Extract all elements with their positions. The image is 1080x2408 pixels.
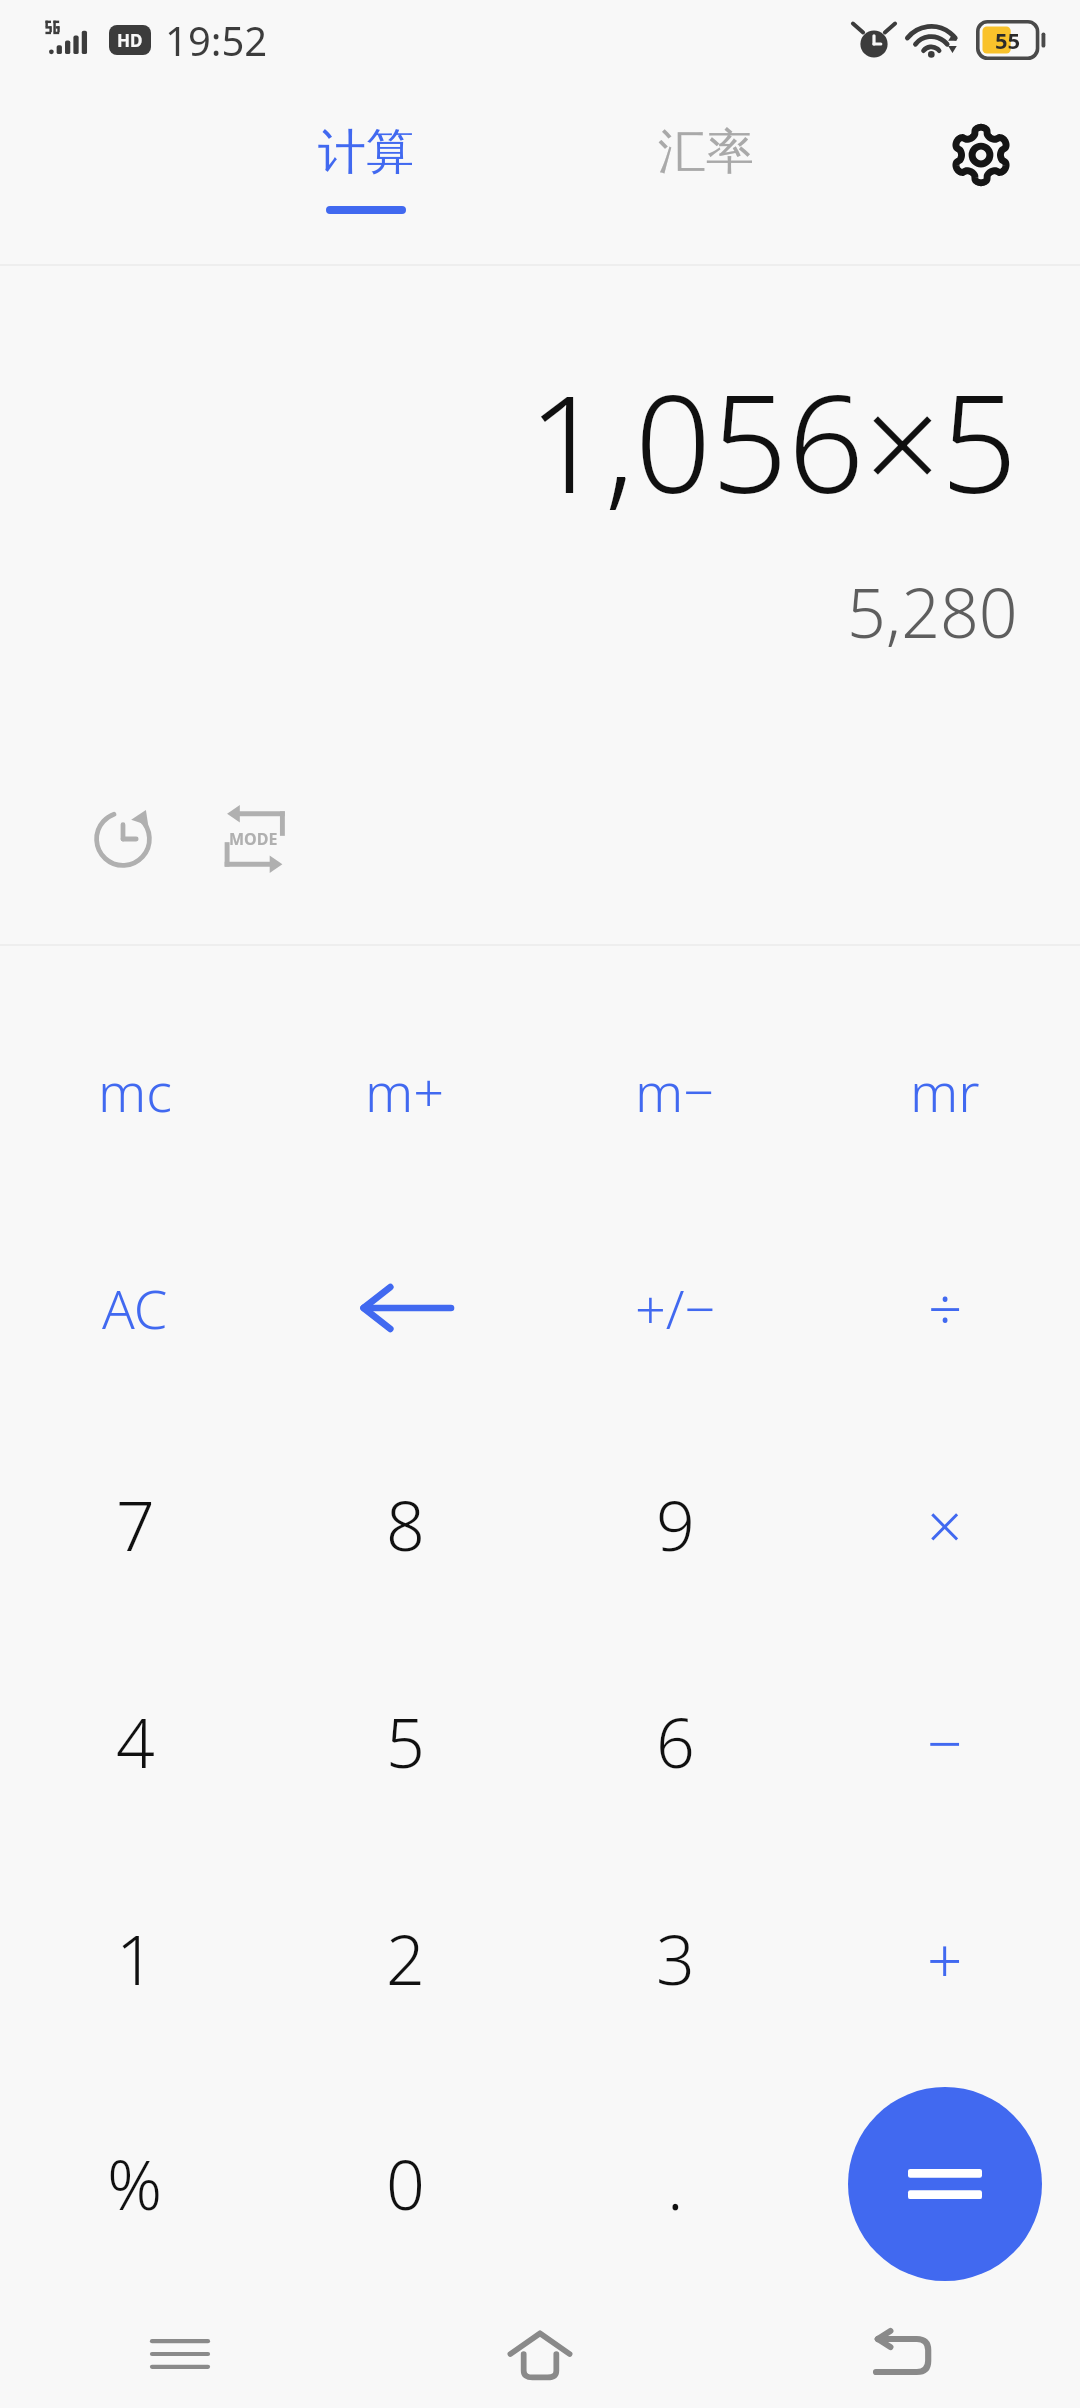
button[interactable]: 7 (0, 1416, 270, 1633)
button[interactable]: m− (540, 982, 810, 1199)
staticText: 计算 (318, 122, 414, 182)
button[interactable]: 汇率 (556, 80, 856, 266)
button[interactable]: − (810, 1633, 1080, 1850)
button[interactable]: % (0, 2067, 270, 2300)
staticText: MODE (229, 828, 278, 850)
staticText: AC (102, 1271, 168, 1345)
button[interactable]: + (810, 1850, 1080, 2067)
staticText: 8 (386, 1478, 425, 1571)
staticText: 汇率 (658, 122, 754, 182)
staticText: m− (635, 1054, 715, 1128)
staticText: 6 (656, 1695, 695, 1788)
button[interactable]: Home (360, 2300, 720, 2408)
button[interactable]: 8 (270, 1416, 540, 1633)
staticText: 7 (116, 1478, 155, 1571)
button[interactable]: 9 (540, 1416, 810, 1633)
button[interactable]: Mode (208, 794, 298, 884)
button[interactable]: AC (0, 1199, 270, 1416)
button[interactable]: m+ (270, 982, 540, 1199)
staticText: 9 (656, 1478, 695, 1571)
staticText: 19:52 (165, 13, 268, 67)
button[interactable]: 计算 (196, 80, 536, 266)
button[interactable]: . (540, 2067, 810, 2300)
staticText: ÷ (928, 1267, 963, 1349)
button[interactable]: Recent apps (0, 2300, 360, 2408)
button[interactable]: mr (810, 982, 1080, 1199)
button[interactable]: 5 (270, 1633, 540, 1850)
staticText: +/− (635, 1271, 716, 1345)
staticText: 0 (386, 2137, 425, 2230)
staticText: 1,056×5 (528, 350, 1018, 533)
staticText: mr (910, 1054, 980, 1128)
staticText: mc (98, 1054, 172, 1128)
button[interactable]: Equals (848, 2087, 1042, 2281)
staticText: . (667, 2137, 684, 2230)
button[interactable]: × (810, 1416, 1080, 1633)
button[interactable]: Settings (906, 80, 1056, 266)
button[interactable]: 2 (270, 1850, 540, 2067)
staticText: 4 (116, 1695, 155, 1788)
button[interactable]: mc (0, 982, 270, 1199)
staticText: % (107, 2137, 163, 2230)
staticText: − (927, 1700, 963, 1784)
staticText: 2 (386, 1912, 425, 2005)
staticText: 55 (995, 25, 1021, 55)
staticText: 3 (656, 1912, 695, 2005)
button[interactable]: 3 (540, 1850, 810, 2067)
staticText: 5,280 (847, 565, 1018, 658)
button[interactable]: 1 (0, 1850, 270, 2067)
staticText: + (927, 1917, 963, 2001)
staticText: 5 (386, 1695, 425, 1788)
staticText: × (927, 1483, 963, 1567)
staticText: HD (117, 29, 143, 52)
button[interactable]: ÷ (810, 1199, 1080, 1416)
button[interactable]: Back (720, 2300, 1080, 2408)
staticText: m+ (365, 1054, 445, 1128)
button[interactable]: 4 (0, 1633, 270, 1850)
button[interactable]: 0 (270, 2067, 540, 2300)
button[interactable]: Backspace (270, 1199, 540, 1416)
button[interactable]: History (78, 794, 168, 884)
staticText: 1 (116, 1912, 155, 2005)
button[interactable]: 6 (540, 1633, 810, 1850)
button[interactable]: +/− (540, 1199, 810, 1416)
